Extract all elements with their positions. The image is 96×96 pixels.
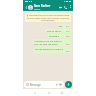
button[interactable]: Hey [57, 24, 71, 28]
staticText: Still on for 8? [47, 30, 65, 32]
staticText: 9:41 [66, 50, 70, 52]
staticText: 9:41 [66, 30, 70, 32]
staticText: Sam Parker [34, 4, 51, 8]
staticText: 🔒 Messages and calls are end-to-end encr… [26, 14, 70, 21]
staticText: Hey [58, 25, 65, 27]
button[interactable]: Video call [58, 5, 63, 10]
button[interactable]: Back [32, 90, 37, 95]
staticText: online [34, 8, 41, 11]
button[interactable]: Recent apps [59, 90, 64, 95]
button[interactable]: 🔒 Messages and calls are end-to-end encr… [25, 13, 71, 22]
staticText: 9:41 [66, 35, 70, 37]
staticText: 9:41 [66, 43, 70, 45]
button[interactable]: Voice message [65, 81, 72, 88]
button[interactable]: Let me know if you want a lift [34, 47, 71, 53]
staticText: Message [30, 83, 41, 87]
staticText: 9:41 [66, 25, 70, 27]
staticText: Booked a table [49, 35, 65, 37]
button[interactable]: Message [24, 81, 64, 88]
staticText: Let me know if you want a lift [35, 48, 65, 52]
button[interactable]: I marked it on the map so you can find t… [33, 39, 71, 46]
button[interactable]: Still on for 8? [46, 29, 71, 33]
button[interactable]: Booked a table [48, 34, 71, 38]
staticText: I marked it on the map so you can find t… [34, 40, 65, 45]
button[interactable]: Back [24, 5, 28, 9]
button[interactable]: Voice call [63, 5, 68, 10]
button[interactable]: Home [46, 90, 51, 95]
button[interactable]: More options [68, 5, 72, 9]
